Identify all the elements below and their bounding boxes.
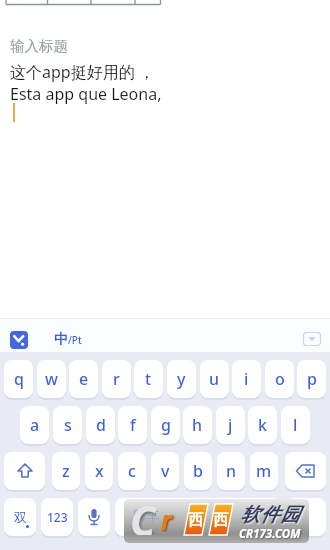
staticText: 输入标题 — [10, 37, 68, 55]
staticText: CR173.COM — [239, 526, 301, 542]
staticText: i — [244, 368, 249, 390]
button[interactable] — [10, 331, 28, 349]
staticText: 西 — [188, 511, 203, 530]
staticText: l — [293, 414, 298, 436]
button[interactable]: t — [134, 360, 163, 398]
button[interactable]: h — [183, 406, 212, 444]
button[interactable] — [286, 498, 326, 536]
staticText: w — [45, 368, 58, 390]
button[interactable]: i — [232, 360, 261, 398]
button[interactable]: s — [53, 406, 82, 444]
staticText: y — [177, 368, 186, 390]
staticText: k — [258, 414, 267, 436]
staticText: 软件园 — [240, 503, 300, 527]
staticText: o — [275, 368, 285, 390]
button[interactable]: b — [184, 452, 212, 490]
button[interactable]: y — [167, 360, 196, 398]
button[interactable]: o — [265, 360, 294, 398]
staticText: 中 — [54, 331, 68, 349]
button[interactable]: d — [86, 406, 115, 444]
staticText: e — [79, 368, 89, 390]
staticText: s — [64, 414, 72, 436]
button[interactable]: n — [217, 452, 245, 490]
button[interactable]: l — [281, 406, 310, 444]
staticText: 这个app挺好用的 ， — [10, 61, 155, 83]
staticText: m — [256, 460, 272, 482]
button[interactable]: w — [37, 360, 66, 398]
button[interactable]: 回车 — [115, 498, 281, 536]
button[interactable]: r — [102, 360, 131, 398]
button[interactable]: e — [69, 360, 98, 398]
staticText: h — [192, 414, 203, 436]
button[interactable]: g — [151, 406, 180, 444]
staticText: 回车 — [186, 510, 210, 525]
staticText: p — [307, 368, 317, 390]
button[interactable]: z — [52, 452, 80, 490]
staticText: u — [209, 368, 220, 390]
button[interactable]: a — [20, 406, 49, 444]
button[interactable]: f — [118, 406, 147, 444]
button[interactable]: 123 — [41, 498, 73, 536]
staticText: b — [193, 460, 203, 482]
staticText: d — [96, 414, 106, 436]
button[interactable]: 中 — [54, 328, 82, 352]
staticText: f — [130, 414, 136, 436]
staticText: n — [226, 460, 237, 482]
staticText: r — [113, 368, 120, 390]
staticText: v — [161, 460, 170, 482]
button[interactable]: u — [200, 360, 229, 398]
button[interactable] — [4, 452, 45, 490]
button[interactable] — [303, 332, 321, 346]
button[interactable]: q — [4, 360, 33, 398]
button[interactable]: x — [85, 452, 113, 490]
button[interactable] — [285, 452, 326, 490]
staticText: j — [228, 414, 233, 436]
button[interactable]: v — [151, 452, 179, 490]
staticText: z — [62, 460, 70, 482]
staticText: c — [128, 460, 136, 482]
staticText: 西 — [213, 511, 228, 530]
staticText: C — [130, 499, 156, 535]
button[interactable]: j — [216, 406, 245, 444]
staticText: /Pt — [68, 333, 82, 347]
staticText: q — [14, 368, 24, 390]
staticText: t — [145, 368, 152, 390]
staticText: a — [30, 414, 40, 436]
button[interactable]: 双 — [4, 498, 36, 536]
button[interactable]: c — [118, 452, 146, 490]
button[interactable] — [78, 498, 110, 536]
staticText: x — [95, 460, 104, 482]
staticText: r — [161, 502, 172, 537]
staticText: g — [161, 414, 171, 436]
staticText: 123 — [47, 509, 68, 525]
button[interactable]: k — [248, 406, 277, 444]
staticText: 双 — [14, 509, 27, 525]
staticText: 回车 — [133, 507, 159, 523]
staticText: Esta app que Leona, — [10, 83, 162, 105]
button[interactable]: p — [297, 360, 326, 398]
button[interactable]: m — [250, 452, 278, 490]
